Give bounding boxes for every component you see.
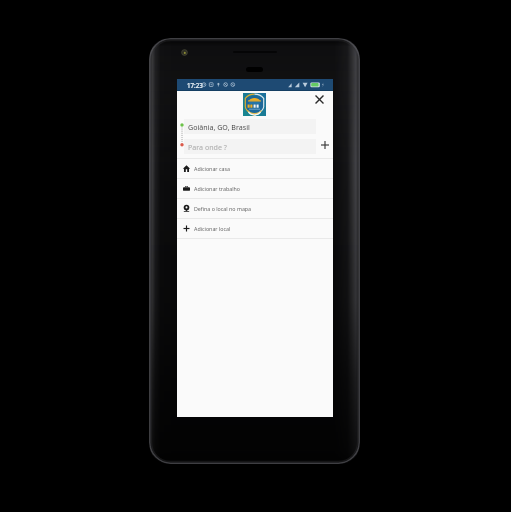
staticText: Para onde ? [188, 142, 227, 152]
staticText: Adicionar casa [194, 165, 230, 172]
button[interactable]: Para onde ? [184, 139, 316, 154]
staticText: Defina o local no mapa [194, 205, 252, 212]
button[interactable]: Goiânia, GO, Brasil [184, 119, 316, 134]
staticText: Adicionar local [194, 225, 231, 232]
button[interactable]: Defina o local no mapa [177, 199, 333, 218]
button[interactable]: Fechar [308, 88, 330, 110]
staticText: Goiânia, GO, Brasil [188, 122, 250, 132]
button[interactable]: Adicionar parada [317, 137, 333, 153]
button[interactable]: Adicionar casa [177, 159, 333, 178]
button[interactable]: Adicionar local [177, 219, 333, 238]
button[interactable]: Adicionar trabalho [177, 179, 333, 198]
staticText: 17:23 [187, 81, 203, 89]
staticText: Adicionar trabalho [194, 185, 240, 192]
